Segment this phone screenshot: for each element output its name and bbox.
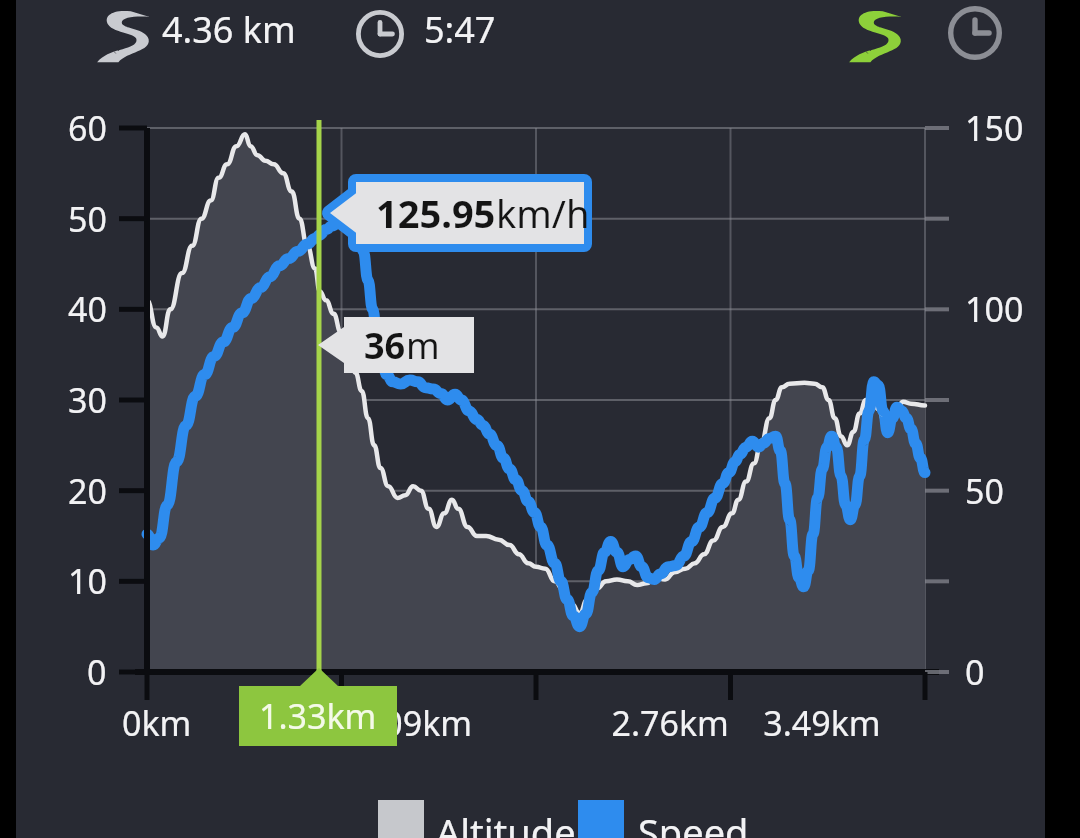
button[interactable]: Track chart — [0, 0, 1080, 838]
